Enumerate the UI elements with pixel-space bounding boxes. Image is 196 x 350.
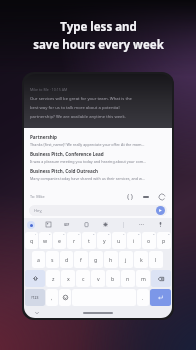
button[interactable]: Assistant — [27, 221, 35, 229]
button[interactable]: Business Pitch, Cold Outreach — [30, 166, 166, 183]
staticText: t — [88, 237, 90, 244]
staticText: . — [142, 294, 144, 301]
button[interactable]: b — [106, 270, 120, 287]
button[interactable]: Refresh — [157, 192, 166, 201]
staticText: 9 — [153, 232, 155, 235]
staticText: ?123 — [31, 295, 39, 300]
staticText: 5 — [93, 232, 95, 235]
staticText: Business Pitch, Cold Outreach — [30, 168, 99, 174]
button[interactable]: Settings — [101, 220, 110, 229]
staticText: v — [97, 275, 100, 282]
button[interactable]: Attach — [141, 192, 150, 201]
staticText: h — [109, 256, 113, 263]
button[interactable]: 1 — [25, 232, 38, 249]
staticText: Our services will be great for your team… — [30, 96, 132, 102]
staticText: Partnership — [30, 134, 58, 140]
staticText: It was a pleasure meeting you today and … — [30, 159, 146, 164]
button[interactable]: . — [137, 289, 149, 306]
staticText: 2 — [49, 232, 51, 235]
staticText: y — [103, 237, 106, 244]
button[interactable]: m — [136, 270, 150, 287]
staticText: 4 — [78, 232, 80, 235]
staticText: n — [126, 275, 130, 282]
button[interactable]: , — [46, 289, 58, 306]
button[interactable]: Hey, — [29, 205, 167, 216]
staticText: c — [82, 275, 85, 282]
staticText: 3 — [63, 232, 65, 235]
button[interactable]: Backspace — [151, 270, 171, 287]
button[interactable]: Send — [156, 206, 165, 215]
button[interactable]: j — [119, 251, 133, 268]
staticText: Type less and — [60, 19, 137, 35]
staticText: best way for us to talk more about a pot… — [30, 105, 120, 111]
staticText: e — [58, 237, 61, 244]
button[interactable]: 0 — [157, 232, 171, 249]
staticText: 0 — [168, 232, 170, 235]
staticText: w — [43, 237, 48, 244]
button[interactable]: Shift — [25, 270, 45, 287]
button[interactable]: k — [134, 251, 148, 268]
button[interactable]: 3 — [53, 232, 66, 249]
button[interactable]: 5 — [82, 232, 96, 249]
button[interactable]: s — [46, 251, 59, 268]
button[interactable]: n — [121, 270, 135, 287]
staticText: l — [155, 256, 157, 263]
button[interactable]: Business Pitch, Conference Lead — [30, 149, 166, 166]
button[interactable]: GIF — [62, 221, 72, 229]
button[interactable]: l — [149, 251, 163, 268]
button[interactable]: d — [60, 251, 73, 268]
button[interactable]: Enter — [150, 289, 171, 306]
staticText: q — [30, 237, 34, 244]
staticText: s — [51, 256, 54, 263]
staticText: GIF — [64, 223, 70, 227]
staticText: Many companies today have shared with us… — [30, 176, 145, 181]
staticText: g — [94, 256, 98, 263]
staticText: z — [52, 275, 55, 282]
button[interactable]: Insert variable — [125, 192, 134, 201]
button[interactable]: 4 — [67, 232, 81, 249]
button[interactable]: Stickers — [44, 220, 53, 229]
button[interactable]: f — [74, 251, 88, 268]
staticText: k — [140, 256, 143, 263]
button[interactable]: Partnership — [30, 132, 166, 149]
button[interactable]: ?123 — [25, 289, 45, 306]
button[interactable]: a — [32, 251, 45, 268]
staticText: Thanks {first_name}! We really appreciat… — [30, 142, 145, 147]
button[interactable]: 9 — [142, 232, 156, 249]
staticText: i — [133, 237, 135, 244]
staticText: p — [162, 237, 166, 244]
staticText: partnership? We are available anytime th… — [30, 114, 126, 120]
staticText: , — [51, 294, 53, 301]
staticText: f — [80, 256, 82, 263]
staticText: 8 — [138, 232, 140, 235]
button[interactable]: v — [91, 270, 105, 287]
button[interactable]: 7 — [112, 232, 126, 249]
button[interactable]: c — [76, 270, 90, 287]
staticText: m — [141, 275, 146, 282]
button[interactable]: 2 — [39, 232, 52, 249]
staticText: r — [73, 237, 76, 244]
button[interactable]: Voice input — [156, 220, 165, 229]
staticText: j — [125, 256, 127, 263]
button[interactable]: h — [104, 251, 118, 268]
button[interactable]: x — [61, 270, 75, 287]
button[interactable]: 8 — [127, 232, 141, 249]
staticText: o — [147, 237, 151, 244]
button[interactable]: Clipboard — [82, 220, 91, 229]
staticText: Business Pitch, Conference Lead — [30, 151, 104, 157]
button[interactable]: More — [137, 220, 146, 229]
staticText: a — [37, 256, 40, 263]
staticText: To: Mike — [30, 194, 45, 199]
staticText: d — [65, 256, 69, 263]
staticText: save hours every week — [33, 37, 164, 53]
staticText: x — [67, 275, 70, 282]
button[interactable]: z — [46, 270, 60, 287]
button[interactable]: Emoji — [59, 289, 71, 306]
button[interactable]: g — [89, 251, 103, 268]
staticText: Hey, — [34, 208, 43, 214]
button[interactable]: 6 — [97, 232, 111, 249]
staticText: Mike to Me · 10:15 AM — [30, 87, 68, 92]
button[interactable]: Hide keyboard — [34, 310, 40, 316]
staticText: b — [111, 275, 115, 282]
